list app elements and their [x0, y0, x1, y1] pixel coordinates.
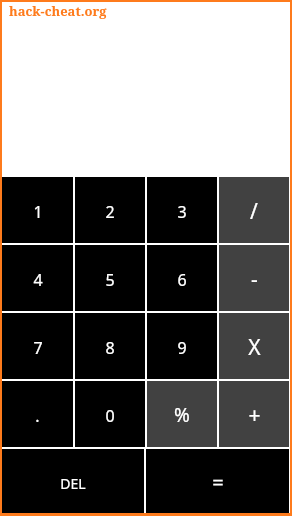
staticText: %	[174, 402, 190, 428]
staticText: /	[250, 197, 258, 226]
staticText: 2	[105, 201, 115, 223]
staticText: X	[248, 333, 261, 362]
staticText: +	[248, 401, 261, 430]
staticText: 0	[105, 405, 115, 427]
button[interactable]: Plus	[219, 381, 289, 447]
staticText: hack-cheat.org	[9, 2, 107, 20]
button[interactable]: 8	[75, 313, 145, 379]
button[interactable]: Decimal point	[2, 381, 73, 447]
button[interactable]: Percent	[147, 381, 217, 447]
staticText: DEL	[60, 474, 86, 493]
staticText: 8	[105, 337, 115, 359]
button[interactable]: Divide	[219, 177, 289, 243]
staticText: 6	[177, 269, 187, 291]
staticText: 1	[33, 201, 43, 223]
staticText: 4	[33, 269, 43, 291]
staticText: 3	[177, 201, 187, 223]
button[interactable]: 9	[147, 313, 217, 379]
button[interactable]: Minus	[219, 245, 289, 311]
button[interactable]: 5	[75, 245, 145, 311]
button[interactable]: Equals	[146, 449, 289, 513]
button[interactable]: 6	[147, 245, 217, 311]
staticText: .	[35, 405, 40, 427]
staticText: -	[251, 265, 258, 294]
button[interactable]: 3	[147, 177, 217, 243]
button[interactable]: 7	[2, 313, 73, 379]
staticText: 7	[33, 337, 43, 359]
staticText: 9	[177, 337, 187, 359]
button[interactable]: 0	[75, 381, 145, 447]
button[interactable]: Multiply	[219, 313, 289, 379]
button[interactable]: 1	[2, 177, 73, 243]
button[interactable]: 4	[2, 245, 73, 311]
staticText: 5	[105, 269, 115, 291]
button[interactable]: DEL	[2, 449, 144, 513]
button[interactable]: 2	[75, 177, 145, 243]
staticText: =	[212, 469, 224, 496]
